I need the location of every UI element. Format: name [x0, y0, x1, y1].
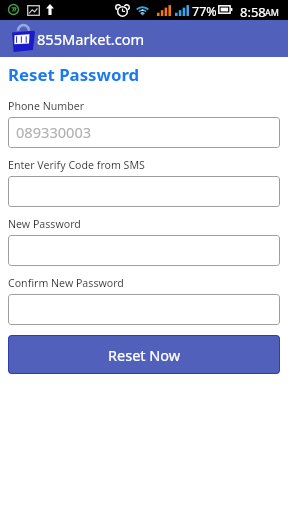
button[interactable]: 089330003 [8, 117, 280, 148]
staticText: Enter Verify Code from SMS [8, 158, 145, 172]
button[interactable] [8, 235, 280, 266]
staticText: AM [265, 6, 279, 18]
staticText: 8:58 [240, 3, 266, 21]
staticText: Confirm New Password [8, 276, 124, 290]
staticText: New Password [8, 217, 81, 231]
button[interactable] [8, 294, 280, 325]
staticText: Reset Password [8, 63, 140, 86]
other: 855Market logo [12, 24, 35, 52]
staticText: 089330003 [16, 122, 92, 142]
staticText: Reset Now [108, 345, 181, 365]
button[interactable]: Reset Now [8, 335, 280, 374]
staticText: 77% [192, 3, 217, 20]
button[interactable]: 855Market logo [8, 20, 139, 57]
staticText: Phone Number [8, 99, 85, 113]
staticText: 855Market.com [37, 29, 145, 49]
button[interactable] [8, 176, 280, 207]
